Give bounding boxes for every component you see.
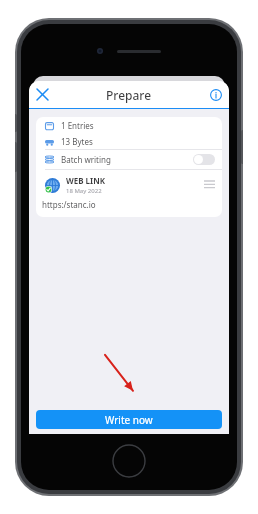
button[interactable]: Close bbox=[29, 81, 56, 108]
staticText: Prepare bbox=[106, 87, 152, 103]
staticText: WEB LINK bbox=[66, 175, 106, 186]
staticText: Batch writing bbox=[61, 154, 111, 165]
button[interactable]: WEB LINK bbox=[45, 175, 215, 195]
button[interactable]: Info bbox=[202, 81, 229, 108]
button[interactable]: Batch writing bbox=[45, 150, 215, 169]
staticText: 18 May 2022 bbox=[66, 187, 102, 195]
button[interactable]: Write now bbox=[36, 410, 222, 429]
staticText: https:/stanc.io bbox=[42, 199, 96, 210]
staticText: 1 Entries bbox=[61, 120, 94, 131]
staticText: Write now bbox=[105, 413, 153, 427]
staticText: 13 Bytes bbox=[61, 136, 93, 147]
